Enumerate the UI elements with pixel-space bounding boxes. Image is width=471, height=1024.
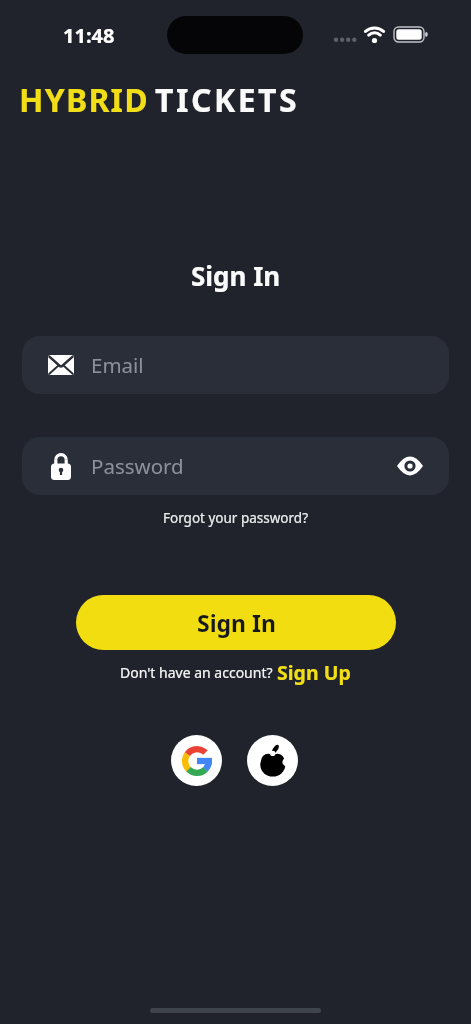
staticText: Don't have an account?: [120, 663, 277, 682]
button[interactable]: Forgot your password?: [163, 509, 309, 527]
button[interactable]: [247, 735, 298, 786]
button[interactable]: Password: [22, 437, 449, 495]
staticText: Password: [91, 452, 184, 480]
staticText: Email: [91, 351, 144, 379]
staticText: Sign In: [197, 607, 276, 638]
button[interactable]: Email: [22, 336, 449, 394]
button[interactable]: Sign Up: [277, 659, 351, 686]
button[interactable]: [397, 457, 423, 475]
button[interactable]: [171, 735, 222, 786]
button[interactable]: Sign In: [76, 595, 396, 650]
staticText: HYBRID: [19, 78, 149, 122]
staticText: 11:48: [63, 22, 115, 49]
staticText: TICKETS: [155, 78, 300, 122]
staticText: Sign In: [191, 258, 281, 293]
